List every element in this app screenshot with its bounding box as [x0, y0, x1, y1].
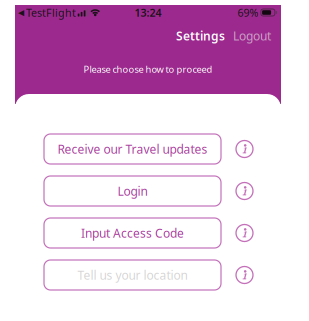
button[interactable]: Input Access Code — [44, 218, 221, 248]
staticText: Input Access Code — [81, 225, 184, 241]
staticText: Settings — [176, 28, 225, 44]
button[interactable]: Receive our Travel updates — [44, 134, 221, 164]
staticText: Login — [117, 183, 147, 199]
staticText: Please choose how to proceed — [83, 63, 212, 75]
staticText: Logout — [233, 28, 271, 44]
staticText: Receive our Travel updates — [57, 141, 207, 157]
staticText: TestFlight — [26, 5, 76, 20]
staticText: 13:24 — [134, 5, 161, 20]
staticText: Tell us your location — [77, 267, 187, 283]
button[interactable]: Tell us your location — [44, 260, 221, 290]
staticText: ◀ — [18, 8, 24, 17]
button[interactable]: More information about Tell us your loca… — [230, 260, 259, 290]
button[interactable]: More information about Input Access Code — [230, 218, 259, 248]
button[interactable]: More information about Login — [230, 176, 259, 206]
button[interactable]: Logout — [233, 24, 271, 48]
button[interactable]: Login — [44, 176, 221, 206]
button[interactable]: Settings — [176, 24, 225, 48]
button[interactable]: More information about Receive our Trave… — [230, 134, 259, 164]
staticText: 69% — [237, 5, 258, 20]
